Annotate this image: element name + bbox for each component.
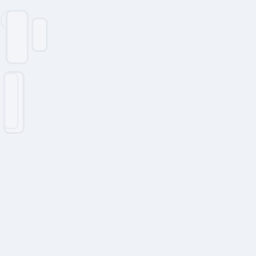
button[interactable]: Card two (32, 18, 47, 51)
button[interactable]: Card three (4, 72, 24, 133)
button[interactable]: Card one (7, 11, 28, 63)
